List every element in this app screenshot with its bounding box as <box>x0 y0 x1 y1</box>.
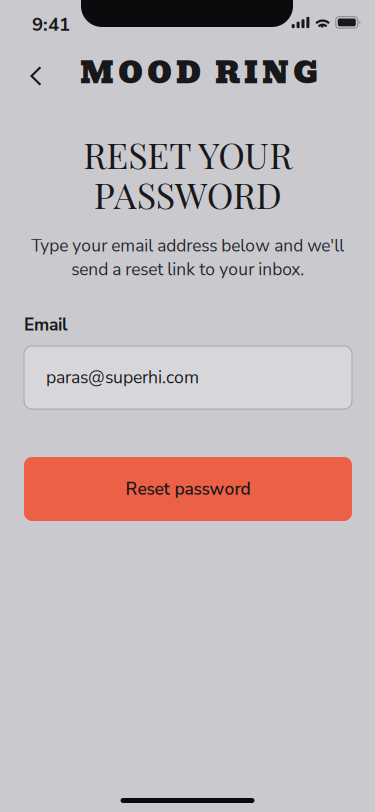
staticText: paras@superhi.com <box>46 365 199 389</box>
staticText: Reset password <box>125 477 250 501</box>
button[interactable]: Reset password <box>24 457 352 521</box>
staticText: PASSWORD <box>93 170 281 218</box>
staticText: MOOD RING <box>80 49 318 96</box>
button[interactable]: Back <box>14 54 58 98</box>
staticText: Email <box>24 313 68 337</box>
staticText: RESET YOUR <box>83 130 292 178</box>
staticText: Type your email address below and we'll … <box>31 234 344 281</box>
staticText: 9:41 <box>32 12 70 37</box>
